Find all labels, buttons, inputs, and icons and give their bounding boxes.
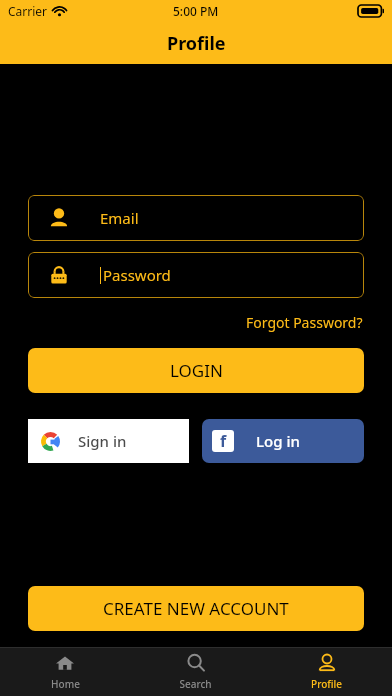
staticText: Password xyxy=(103,265,171,285)
staticText: Profile xyxy=(311,677,342,691)
button[interactable]: Search xyxy=(130,647,261,696)
button[interactable]: CREATE NEW ACCOUNT xyxy=(28,586,364,631)
staticText: Carrier xyxy=(8,3,48,19)
staticText: 5:00 PM xyxy=(173,3,219,19)
button[interactable]: Profile xyxy=(261,647,392,696)
staticText: Home xyxy=(51,677,80,691)
button[interactable]: Email xyxy=(28,195,364,241)
staticText: LOGIN xyxy=(170,359,223,382)
other: Home xyxy=(55,653,75,673)
staticText: Sign in xyxy=(78,431,127,451)
staticText: CREATE NEW ACCOUNT xyxy=(103,597,289,620)
other: Search xyxy=(186,653,206,673)
button[interactable]: LOGIN xyxy=(28,348,364,393)
button[interactable]: Password xyxy=(28,252,364,298)
button[interactable]: Forgot Password? xyxy=(244,310,365,335)
staticText: Forgot Password? xyxy=(246,313,363,332)
button[interactable]: f xyxy=(202,419,364,463)
staticText: f xyxy=(220,430,227,452)
staticText: Log in xyxy=(256,431,300,451)
staticText: Profile xyxy=(167,31,226,56)
button[interactable]: Home xyxy=(0,647,130,696)
staticText: Email xyxy=(100,208,139,228)
button[interactable]: Sign in xyxy=(28,419,189,463)
staticText: Search xyxy=(179,677,212,691)
other: Profile xyxy=(317,653,337,673)
